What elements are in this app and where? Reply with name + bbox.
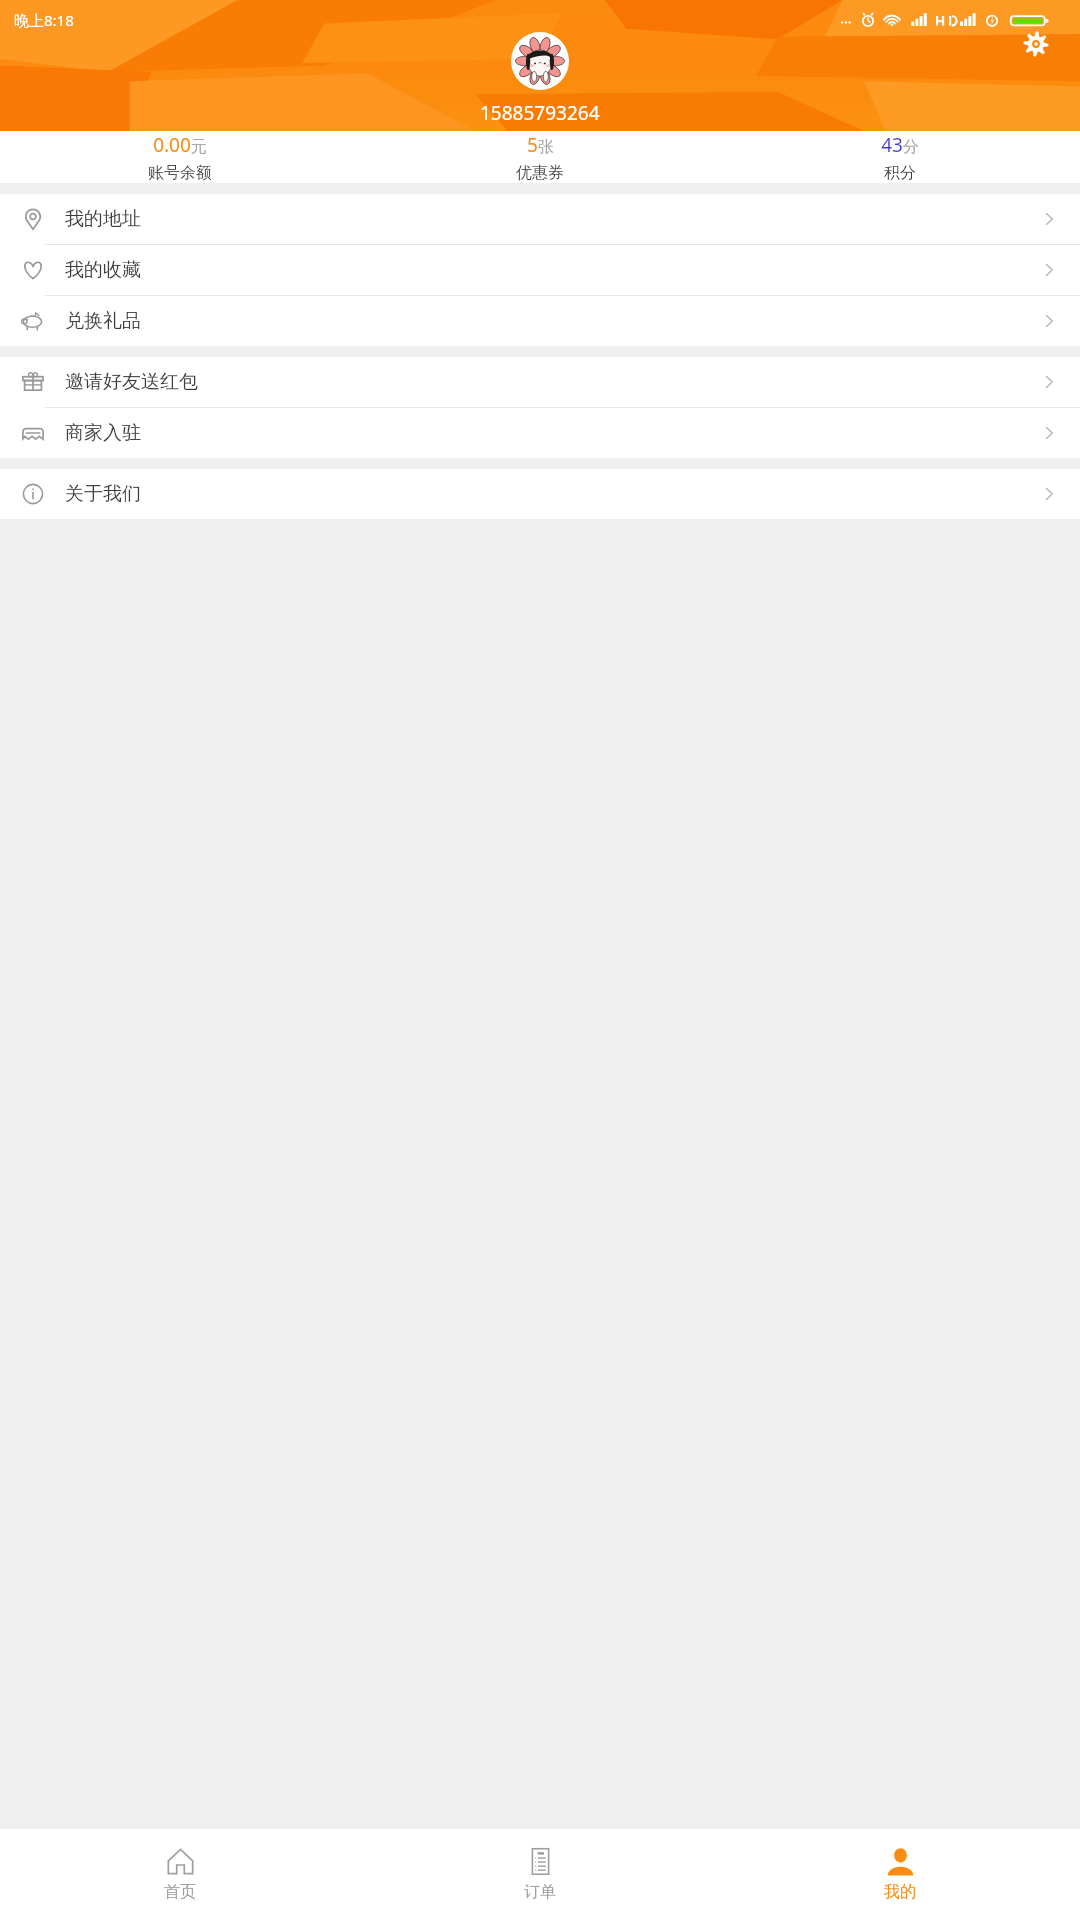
button[interactable]: 0.00元	[0, 131, 360, 183]
staticText: 订单	[524, 1882, 556, 1902]
staticText: 15885793264	[480, 100, 600, 126]
staticText: 我的地址	[65, 207, 141, 231]
staticText: 积分	[884, 163, 916, 183]
staticText: 我的	[884, 1882, 916, 1902]
staticText: 0.00元	[153, 132, 207, 158]
staticText: 关于我们	[65, 482, 141, 506]
button[interactable]: 订单	[360, 1828, 720, 1920]
button[interactable]: Avatar	[511, 32, 569, 90]
button[interactable]: 邀请好友送红包	[0, 357, 1080, 407]
button[interactable]: 5张	[360, 131, 720, 183]
staticText: 我的收藏	[65, 258, 141, 282]
staticText: 晚上8:18	[14, 10, 74, 30]
button[interactable]: 首页	[0, 1828, 360, 1920]
staticText: 兑换礼品	[65, 309, 141, 333]
staticText: 43分	[881, 132, 919, 158]
staticText: 账号余额	[148, 163, 212, 183]
button[interactable]: 我的地址	[0, 194, 1080, 244]
button[interactable]: 关于我们	[0, 469, 1080, 519]
staticText: 优惠券	[516, 163, 564, 183]
staticText: 首页	[164, 1882, 196, 1902]
button[interactable]: 兑换礼品	[0, 296, 1080, 346]
button[interactable]: 商家入驻	[0, 408, 1080, 458]
staticText: 商家入驻	[65, 421, 141, 445]
button[interactable]: 我的	[720, 1828, 1080, 1920]
button[interactable]: Settings	[1010, 18, 1062, 70]
button[interactable]: 我的收藏	[0, 245, 1080, 295]
staticText: 邀请好友送红包	[65, 370, 198, 394]
button[interactable]: 43分	[720, 131, 1080, 183]
staticText: 5张	[527, 132, 554, 158]
